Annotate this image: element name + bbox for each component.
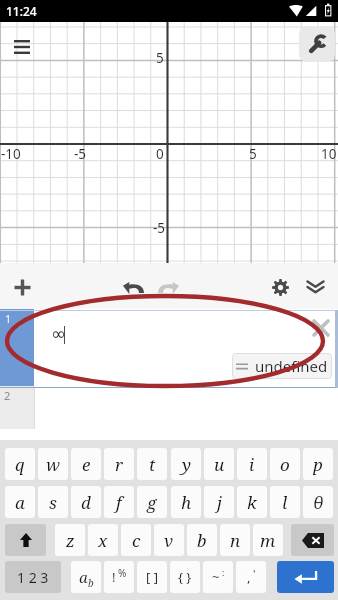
- button[interactable]: x: [88, 524, 118, 556]
- button[interactable]: j: [204, 486, 234, 518]
- staticText: x: [98, 529, 108, 552]
- staticText: -5: [74, 145, 87, 163]
- button[interactable]: f: [104, 486, 134, 518]
- staticText: a: [79, 567, 88, 587]
- button[interactable]: y: [171, 448, 201, 480]
- button[interactable]: { }: [170, 561, 200, 593]
- button[interactable]: 1: [0, 309, 338, 386]
- staticText: y: [182, 453, 191, 476]
- staticText: :: [222, 566, 225, 578]
- staticText: e: [82, 453, 91, 476]
- button[interactable]: θ: [303, 486, 333, 518]
- button[interactable]: Shift: [5, 524, 46, 556]
- button[interactable]: p: [303, 448, 333, 480]
- staticText: u: [214, 453, 225, 476]
- button[interactable]: z: [55, 524, 85, 556]
- staticText: r: [115, 453, 123, 476]
- button[interactable]: i: [237, 448, 267, 480]
- staticText: [ ]: [146, 568, 158, 586]
- button[interactable]: b: [187, 524, 217, 556]
- button[interactable]: 2: [0, 386, 338, 429]
- button[interactable]: o: [270, 448, 300, 480]
- staticText: -10: [1, 145, 21, 163]
- button[interactable]: undefined: [232, 353, 332, 379]
- button[interactable]: r: [104, 448, 134, 480]
- staticText: { }: [178, 568, 192, 586]
- staticText: ': [253, 566, 256, 581]
- staticText: q: [15, 453, 25, 476]
- staticText: j: [217, 491, 222, 514]
- staticText: m: [260, 529, 276, 552]
- button[interactable]: v: [154, 524, 184, 556]
- button[interactable]: s: [38, 486, 68, 518]
- staticText: ~: [212, 568, 220, 586]
- button[interactable]: Delete expression: [308, 315, 334, 341]
- button[interactable]: n: [220, 524, 250, 556]
- button[interactable]: a: [5, 486, 35, 518]
- button[interactable]: [ ]: [137, 561, 167, 593]
- button[interactable]: Undo: [117, 272, 149, 304]
- staticText: !: [112, 568, 116, 586]
- button[interactable]: l: [270, 486, 300, 518]
- staticText: k: [247, 491, 257, 514]
- staticText: 2: [4, 388, 11, 403]
- staticText: n: [230, 529, 241, 552]
- staticText: 5: [249, 145, 257, 163]
- staticText: f: [116, 491, 122, 514]
- staticText: c: [132, 529, 141, 552]
- staticText: i: [249, 453, 255, 476]
- button[interactable]: d: [71, 486, 101, 518]
- staticText: b: [88, 576, 94, 590]
- staticText: a: [15, 491, 25, 514]
- button[interactable]: Graph settings: [299, 26, 335, 62]
- button[interactable]: w: [38, 448, 68, 480]
- staticText: b: [197, 529, 207, 552]
- staticText: l: [282, 491, 288, 514]
- staticText: 1: [5, 311, 12, 326]
- staticText: d: [81, 491, 91, 514]
- staticText: 0: [156, 145, 164, 163]
- staticText: ,: [247, 568, 251, 586]
- button[interactable]: q: [5, 448, 35, 480]
- button[interactable]: Redo: [152, 272, 184, 304]
- staticText: -5: [153, 219, 166, 237]
- button[interactable]: k: [237, 486, 267, 518]
- staticText: 11:24: [6, 3, 37, 19]
- button[interactable]: ,: [236, 561, 266, 593]
- staticText: %: [118, 566, 127, 580]
- staticText: p: [313, 453, 323, 476]
- button[interactable]: u: [204, 448, 234, 480]
- staticText: 10: [321, 145, 337, 163]
- button[interactable]: g: [137, 486, 167, 518]
- staticText: z: [66, 529, 75, 552]
- staticText: w: [46, 453, 60, 476]
- button[interactable]: e: [71, 448, 101, 480]
- button[interactable]: t: [137, 448, 167, 480]
- button[interactable]: h: [171, 486, 201, 518]
- staticText: 1 2 3: [17, 568, 49, 587]
- staticText: h: [181, 491, 192, 514]
- button[interactable]: m: [253, 524, 283, 556]
- staticText: t: [149, 453, 156, 476]
- staticText: θ: [313, 491, 324, 514]
- button[interactable]: 1 2 3: [5, 561, 61, 593]
- button[interactable]: Backspace: [291, 524, 334, 556]
- button[interactable]: c: [121, 524, 151, 556]
- staticText: 5: [156, 49, 164, 67]
- staticText: g: [147, 491, 157, 514]
- staticText: undefined: [255, 356, 328, 376]
- button[interactable]: a: [71, 561, 101, 593]
- button[interactable]: Add expression: [6, 271, 38, 303]
- staticText: o: [280, 453, 290, 476]
- staticText: ∞: [51, 323, 66, 344]
- button[interactable]: Settings: [264, 271, 296, 303]
- button[interactable]: ~: [203, 561, 233, 593]
- button[interactable]: !: [104, 561, 134, 593]
- staticText: v: [164, 529, 174, 552]
- button[interactable]: Collapse keypad: [299, 271, 331, 303]
- button[interactable]: Menu: [6, 31, 38, 63]
- button[interactable]: Enter: [277, 561, 334, 593]
- staticText: s: [49, 491, 57, 514]
